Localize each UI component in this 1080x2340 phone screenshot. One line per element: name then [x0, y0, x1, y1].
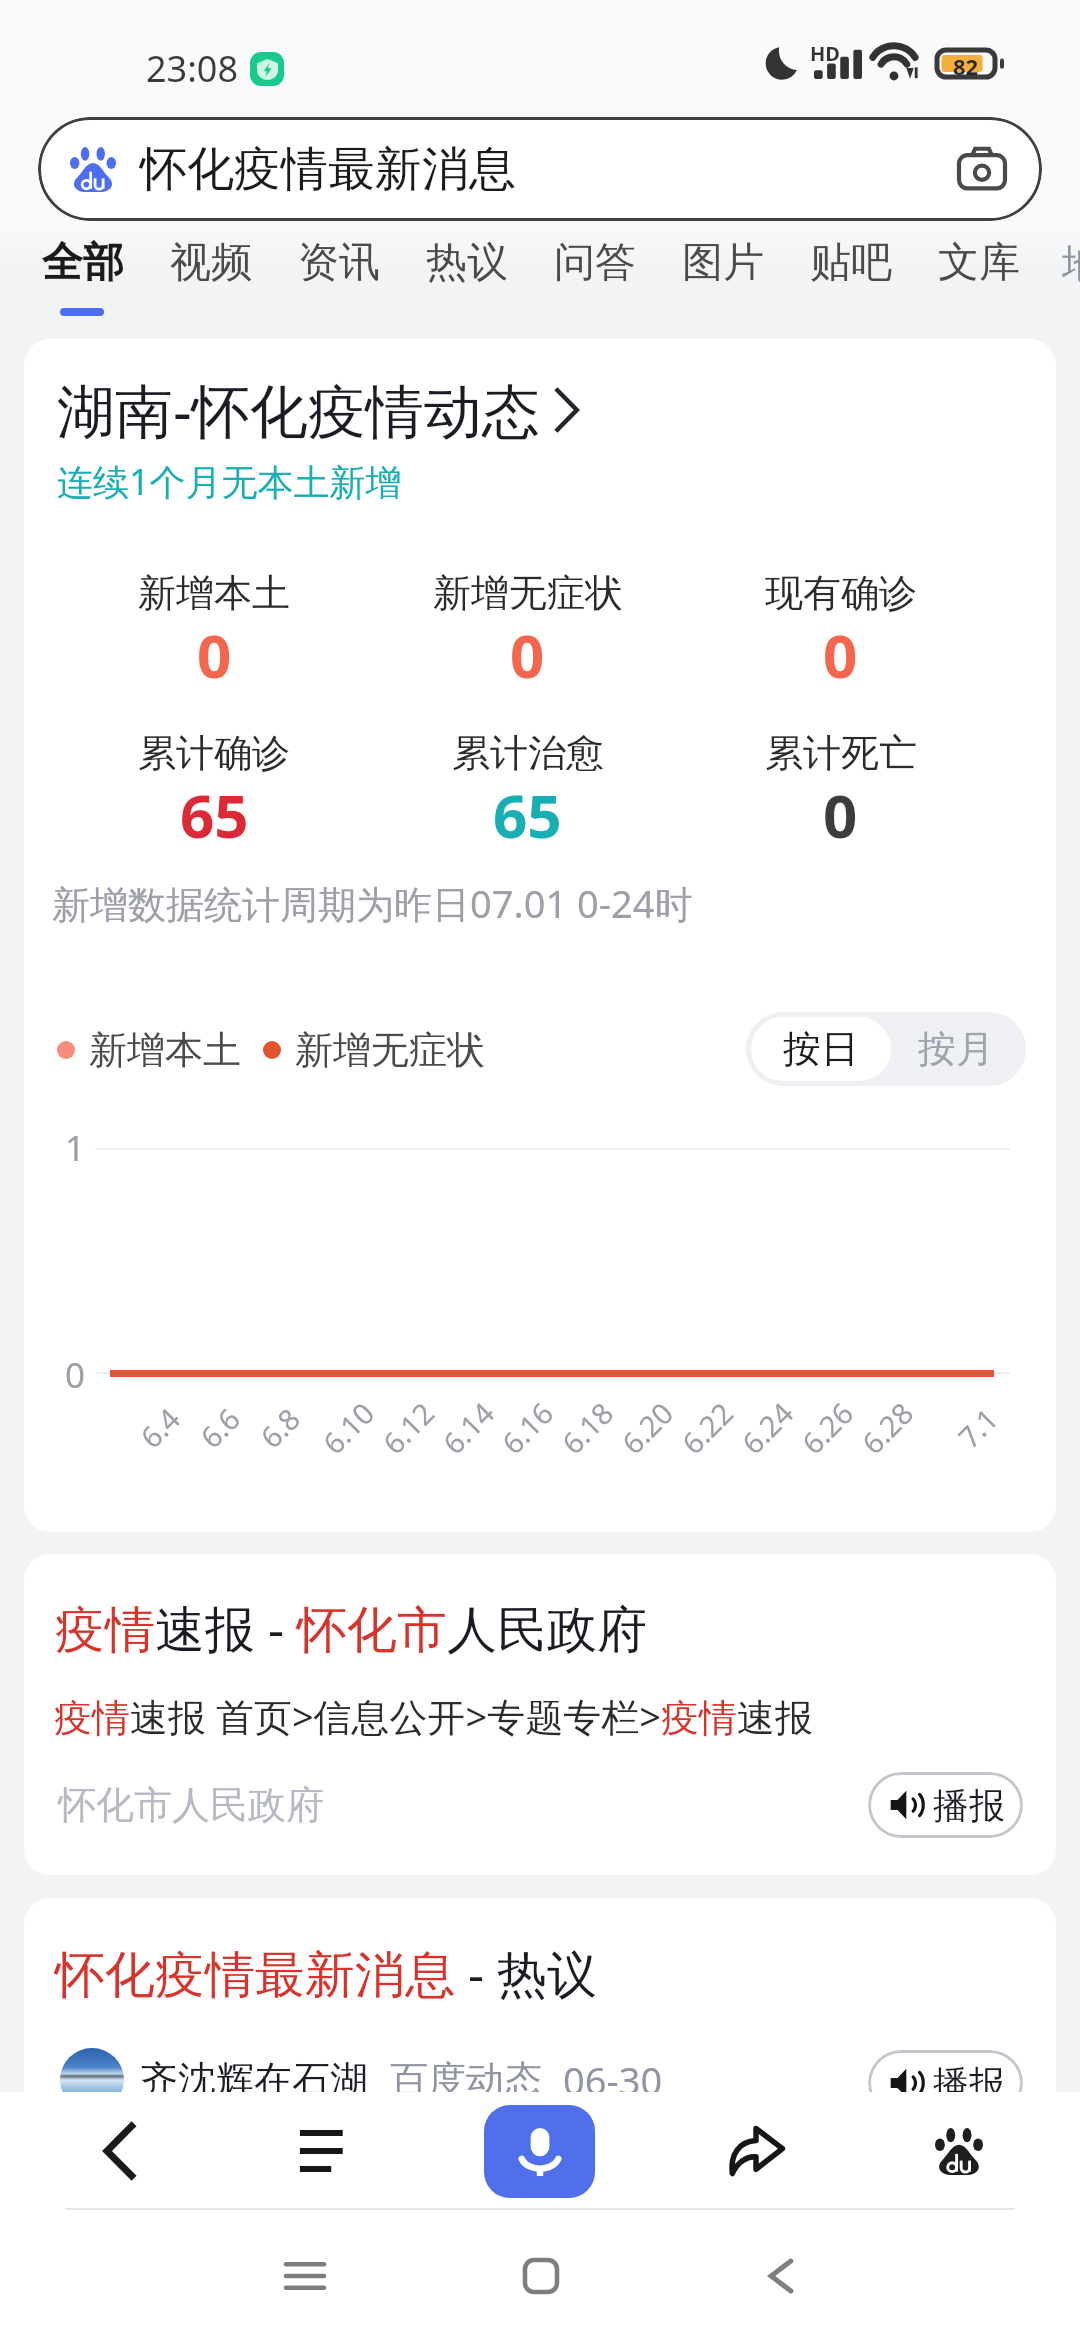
button[interactable]: 贴吧 — [800, 237, 900, 317]
staticText: 累计确诊 — [138, 729, 290, 777]
staticText: 播报 — [933, 2061, 1005, 2106]
button[interactable]: Camera search — [959, 146, 1005, 192]
button[interactable]: Baidu home — [909, 2101, 1009, 2201]
staticText: 齐沈辉在石湖 — [140, 2056, 368, 2104]
staticText: 现有确诊 — [765, 569, 917, 617]
button[interactable]: 全部 — [32, 237, 132, 317]
staticText: 6.20 — [613, 1393, 681, 1462]
staticText: 65 — [180, 774, 249, 856]
button[interactable]: Home — [491, 2226, 591, 2326]
staticText: 6.10 — [314, 1393, 382, 1462]
staticText: 6.14 — [434, 1393, 502, 1462]
staticText: 0 — [510, 614, 545, 696]
staticText: 视频 — [170, 237, 252, 289]
button[interactable]: 图片 — [672, 237, 772, 317]
staticText: 6.16 — [493, 1393, 561, 1462]
staticText: HD — [810, 40, 840, 67]
staticText: 新增本土 — [138, 569, 290, 617]
staticText: 6.8 — [251, 1399, 308, 1456]
staticText: 23:08 — [146, 44, 239, 93]
button[interactable]: 按月 — [891, 1017, 1021, 1081]
staticText: 1 — [65, 1124, 86, 1172]
staticText: 累计治愈 — [452, 729, 604, 777]
staticText: 贴吧 — [810, 237, 892, 289]
button[interactable]: 按日 — [751, 1017, 891, 1081]
staticText: 怀化市人民政府 — [58, 1781, 324, 1829]
staticText: 累计死亡 — [765, 729, 917, 777]
button[interactable]: 怀化疫情最新消息 - 热议 — [24, 1898, 1056, 2228]
staticText: 怀化疫情最新消息 — [140, 140, 516, 199]
button[interactable]: 文库 — [928, 237, 1028, 317]
staticText: 6.22 — [673, 1393, 741, 1462]
staticText: 文库 — [938, 237, 1020, 289]
staticText: 82 — [953, 51, 979, 81]
button[interactable]: 湖南-怀化疫情动态 — [57, 370, 584, 449]
button[interactable]: Share — [706, 2101, 806, 2201]
staticText: 图片 — [682, 237, 764, 289]
button[interactable]: Recents — [255, 2226, 355, 2326]
staticText: 全部 — [42, 237, 124, 289]
button[interactable]: Back — [69, 2101, 169, 2201]
button[interactable]: Back nav — [731, 2226, 831, 2326]
staticText: 7.1 — [949, 1399, 1006, 1456]
staticText: 百度动态 — [390, 2056, 542, 2104]
staticText: 06-30 — [563, 2054, 663, 2106]
staticText: 0 — [823, 614, 858, 696]
staticText: 0 — [65, 1351, 86, 1399]
staticText: 热议 — [426, 237, 508, 289]
staticText: 6.4 — [131, 1399, 188, 1456]
button[interactable]: 播报 — [868, 2050, 1023, 2116]
staticText: 怀化疫情最新消息 - 热议 — [55, 1939, 598, 2007]
staticText: 按日 — [783, 1025, 859, 1073]
button[interactable]: Menu — [272, 2101, 372, 2201]
staticText: 6.12 — [374, 1393, 442, 1462]
staticText: 新增数据统计周期为昨日07.01 0-24时 — [52, 877, 693, 929]
staticText: 65 — [493, 774, 562, 856]
staticText: 0 — [197, 614, 232, 696]
staticText: 6.28 — [853, 1393, 921, 1462]
button[interactable]: 疫情速报 - 怀化市人民政府 — [24, 1554, 1056, 1875]
button[interactable]: 视频 — [160, 237, 260, 317]
button[interactable]: 问答 — [544, 237, 644, 317]
staticText: 6.18 — [553, 1393, 621, 1462]
staticText: 资讯 — [298, 237, 380, 289]
staticText: 连续1个月无本土新增 — [57, 457, 402, 506]
button[interactable]: Voice search — [484, 2105, 595, 2198]
staticText: 播报 — [933, 1783, 1005, 1828]
staticText: 6.6 — [191, 1399, 248, 1456]
button[interactable]: 怀化疫情最新消息 — [38, 117, 1042, 221]
staticText: 6.24 — [733, 1393, 801, 1462]
button[interactable]: 热议 — [416, 237, 516, 317]
staticText: 地 — [1062, 239, 1080, 291]
staticText: 新增无症状 — [295, 1026, 485, 1074]
staticText: 按月 — [918, 1025, 994, 1073]
staticText: 6.26 — [793, 1393, 861, 1462]
staticText: 0 — [823, 774, 858, 856]
button[interactable]: 播报 — [868, 1772, 1023, 1838]
staticText: 疫情速报 - 怀化市人民政府 — [55, 1594, 648, 1662]
staticText: 疫情速报 首页>信息公开>专题专栏>疫情速报 — [54, 1690, 814, 1742]
staticText: 湖南-怀化疫情动态 — [57, 370, 540, 449]
staticText: 新增无症状 — [433, 569, 623, 617]
staticText: 问答 — [554, 237, 636, 289]
button[interactable]: 资讯 — [288, 237, 388, 317]
staticText: 新增本土 — [89, 1026, 241, 1074]
